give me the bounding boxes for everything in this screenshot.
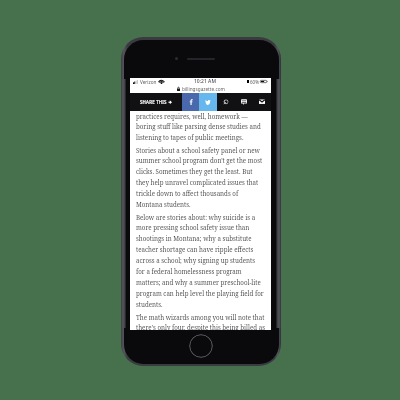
staticText: billingsgazette.com [182,86,225,92]
button[interactable]: billingsgazette.com [177,86,225,92]
staticText: practices requires, well, homework — bor… [136,112,265,142]
staticText: 10:21 AM [194,78,216,85]
button[interactable]: Share on Twitter [199,93,217,111]
staticText: Verizon [140,79,157,85]
staticText: SHARE THIS [140,99,167,105]
staticText: 60% [250,79,259,85]
button[interactable]: Share on WhatsApp [217,93,235,111]
button[interactable]: Comment [235,93,253,111]
button[interactable]: Share on Facebook [182,93,199,111]
button[interactable]: SHARE THIS [130,93,182,111]
staticText: Stories about a school safety panel or n… [136,146,265,209]
staticText: Below are stories about: why suicide is … [136,213,265,309]
staticText: The math wizards among you will note tha… [136,313,265,330]
button[interactable]: Home [189,334,213,358]
button[interactable]: Share by email [253,93,271,111]
